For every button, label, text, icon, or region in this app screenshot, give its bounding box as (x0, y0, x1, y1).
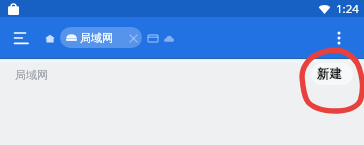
staticText: 新建 (317, 66, 342, 82)
staticText: 1:24 (336, 1, 359, 17)
button[interactable]: Navigation menu (8, 25, 34, 51)
button[interactable]: Home (40, 28, 60, 48)
button[interactable]: 局域网 (60, 27, 142, 48)
button[interactable]: More options (326, 25, 352, 51)
button[interactable]: 新建 (311, 63, 353, 85)
button[interactable]: Close tab (125, 30, 141, 46)
staticText: 局域网 (80, 31, 113, 45)
button[interactable]: Cloud tab (160, 29, 178, 47)
button[interactable]: Window tab (144, 29, 162, 47)
staticText: 局域网 (15, 68, 48, 82)
